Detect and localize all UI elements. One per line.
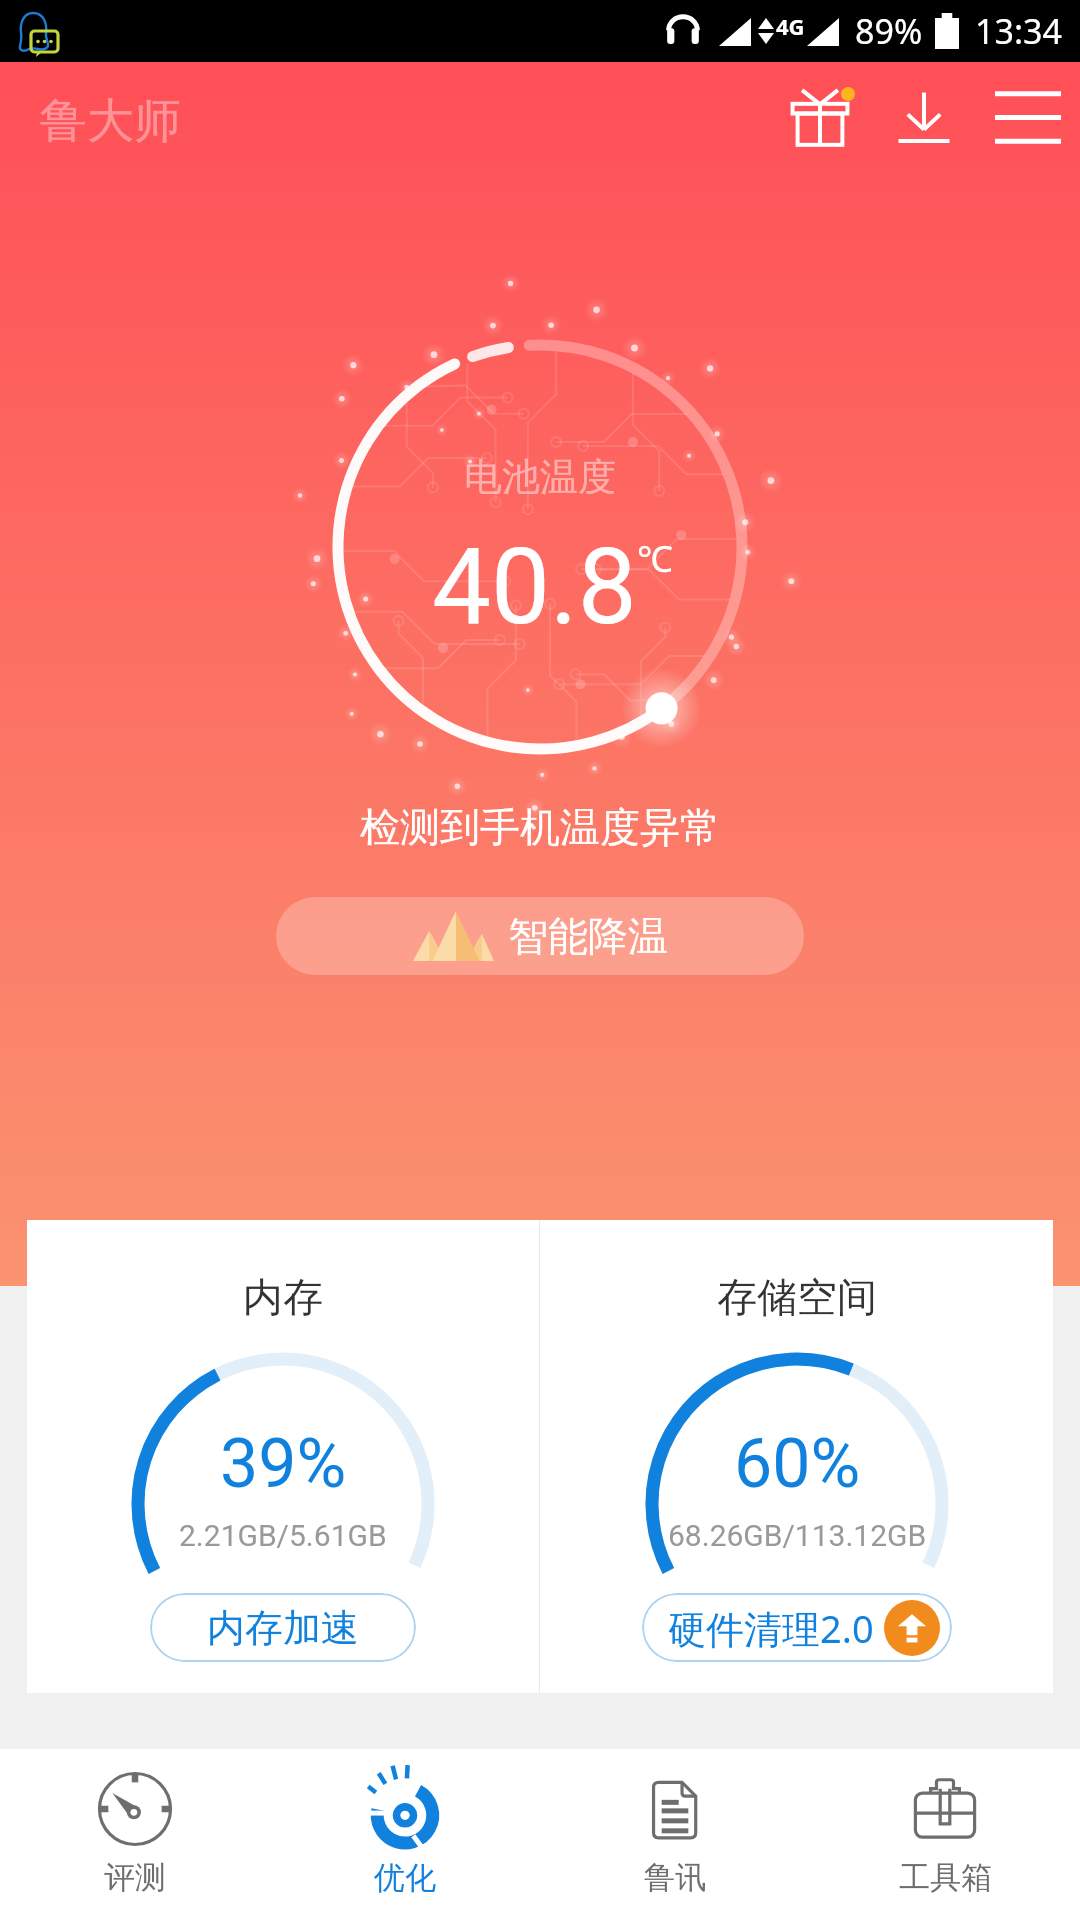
button[interactable]: Gifts	[768, 65, 872, 169]
button[interactable]: 内存加速	[207, 1593, 359, 1662]
button[interactable]: Downloads	[872, 65, 976, 169]
staticText: 40.8	[432, 526, 637, 649]
button[interactable]: 评测	[0, 1749, 270, 1920]
staticText: 存储空间	[717, 1272, 877, 1322]
staticText: 硬件清理2.0	[668, 1602, 874, 1654]
staticText: 39%	[220, 1424, 347, 1504]
button[interactable]: 鲁讯	[540, 1749, 810, 1920]
button[interactable]: 存储空间	[540, 1220, 1053, 1693]
staticText: 智能降温	[508, 911, 668, 961]
button[interactable]: 工具箱	[810, 1749, 1080, 1920]
staticText: 60%	[734, 1424, 861, 1504]
staticText: 89%	[855, 8, 923, 54]
staticText: 4G	[776, 11, 805, 41]
staticText: 优化	[374, 1858, 436, 1897]
button[interactable]: Menu	[976, 65, 1080, 169]
staticText: 电池温度	[464, 453, 616, 501]
staticText: 内存加速	[207, 1604, 359, 1652]
staticText: 评测	[104, 1858, 166, 1897]
staticText: 2.21GB/5.61GB	[179, 1518, 387, 1553]
staticText: 工具箱	[899, 1858, 992, 1897]
staticText: 内存	[243, 1272, 323, 1322]
staticText: 鲁讯	[644, 1858, 706, 1897]
button[interactable]: 硬件清理2.0	[668, 1593, 940, 1662]
button[interactable]: 优化	[270, 1749, 540, 1920]
staticText: 鲁大师	[40, 92, 181, 151]
button[interactable]: 智能降温	[276, 897, 804, 975]
staticText: ℃	[637, 534, 673, 583]
staticText: 68.26GB/113.12GB	[668, 1518, 927, 1553]
staticText: 检测到手机温度异常	[0, 802, 1080, 852]
button[interactable]: 内存	[27, 1220, 539, 1693]
staticText: 13:34	[975, 8, 1062, 54]
